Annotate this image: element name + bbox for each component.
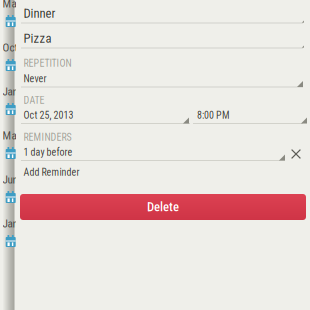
staticText: Mar [2, 129, 19, 142]
staticText: Never [23, 73, 46, 85]
button[interactable]: 8:00 PM [193, 109, 309, 125]
button[interactable]: Remove reminder [287, 145, 305, 163]
staticText: Jan [2, 85, 17, 98]
button[interactable]: Oct 25, 2013 [16, 109, 188, 125]
staticText: Delete [147, 200, 179, 214]
staticText: REMINDERS [23, 131, 71, 143]
button[interactable]: Never [16, 73, 304, 89]
staticText: Jun [2, 173, 17, 186]
button[interactable]: 1 day before [16, 146, 284, 162]
staticText: Oct [2, 41, 17, 54]
staticText: REPETITION [23, 57, 71, 69]
button[interactable]: Pizza [16, 23, 304, 48]
staticText: Pizza [23, 31, 51, 46]
staticText: Add Reminder [23, 166, 79, 178]
staticText: 8:00 PM [197, 109, 230, 121]
staticText: Jan [2, 217, 17, 230]
button[interactable]: Dinner [16, 0, 304, 23]
staticText: DATE [23, 94, 44, 106]
staticText: Oct 25, 2013 [23, 109, 73, 121]
button[interactable]: Delete [20, 194, 306, 220]
staticText: Dinner [23, 6, 55, 21]
button[interactable]: Add Reminder [16, 166, 116, 182]
staticText: 1 day before [23, 146, 72, 158]
staticText: Mar [2, 0, 19, 10]
